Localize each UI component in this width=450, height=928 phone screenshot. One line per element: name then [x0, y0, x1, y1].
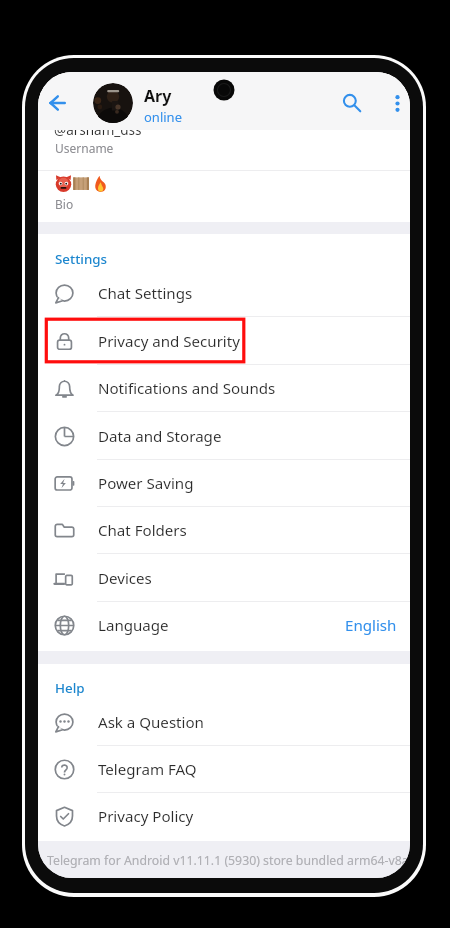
staticText: Telegram FAQ — [98, 759, 197, 780]
button[interactable] — [38, 318, 410, 365]
button[interactable] — [38, 270, 410, 317]
button[interactable] — [38, 114, 410, 171]
button[interactable] — [38, 413, 410, 460]
staticText: Ask a Question — [98, 712, 204, 733]
button[interactable] — [38, 793, 410, 840]
staticText: Notifications and Sounds — [98, 378, 276, 399]
staticText: Devices — [98, 568, 152, 589]
staticText: online — [144, 108, 182, 126]
staticText: English — [345, 615, 397, 636]
button[interactable] — [38, 171, 410, 221]
staticText: Username — [55, 140, 114, 156]
staticText: Help — [55, 679, 85, 697]
staticText: Bio — [55, 196, 74, 212]
button[interactable]: More options — [383, 89, 410, 117]
staticText: Data and Storage — [98, 426, 222, 447]
staticText: Language — [98, 615, 169, 636]
staticText: Privacy Policy — [98, 806, 194, 827]
button[interactable] — [38, 460, 410, 507]
button[interactable] — [38, 555, 410, 602]
button[interactable]: Back — [43, 89, 71, 117]
staticText: Settings — [55, 250, 108, 268]
staticText: Ary — [144, 85, 172, 107]
staticText: @arsham_dss — [54, 121, 142, 139]
button[interactable]: Search — [338, 89, 366, 117]
staticText: Telegram for Android v11.11.1 (5930) sto… — [47, 852, 409, 869]
staticText: Chat Folders — [98, 520, 187, 541]
button[interactable] — [38, 602, 410, 649]
button[interactable] — [38, 699, 410, 746]
staticText: Chat Settings — [98, 283, 193, 304]
staticText: Power Saving — [98, 473, 194, 494]
button[interactable] — [38, 365, 410, 412]
button[interactable] — [38, 746, 410, 793]
button[interactable] — [38, 507, 410, 554]
staticText: Privacy and Security — [98, 331, 240, 352]
